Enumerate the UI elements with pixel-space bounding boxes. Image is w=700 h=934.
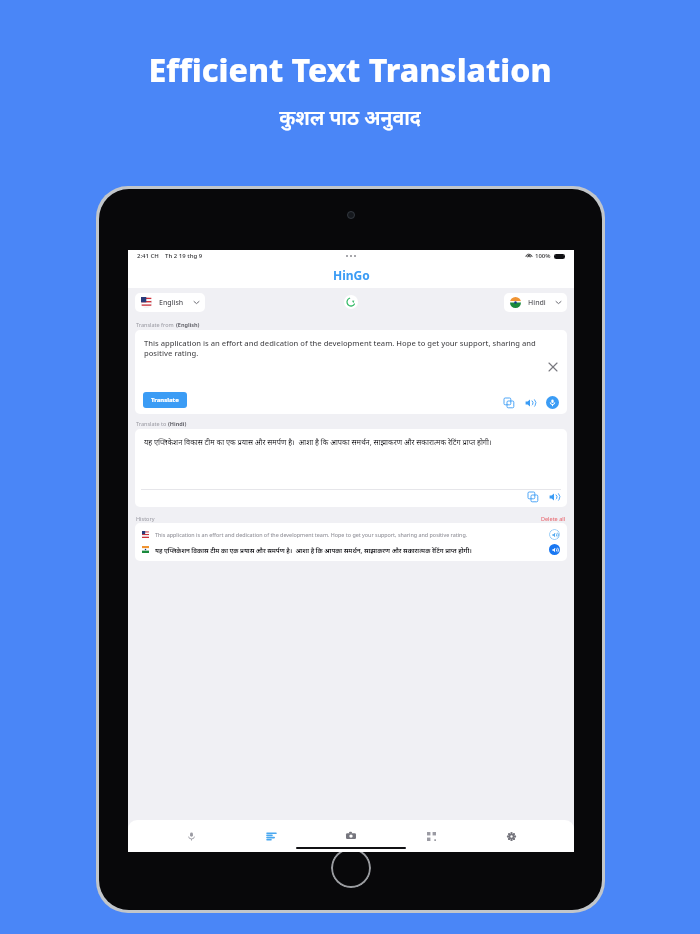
button[interactable]: Copy [528,492,538,502]
staticText: Efficient Text Translation [0,48,700,92]
button[interactable]: Translate [143,392,187,408]
staticText: 100% [535,252,551,260]
staticText: 2:41 CH [137,252,159,260]
button[interactable]: Speak [525,398,535,408]
staticText: English [159,298,184,308]
button[interactable]: Swap languages [344,295,358,309]
button[interactable]: Clear [548,362,558,372]
button[interactable]: Settings [494,827,528,845]
button[interactable]: English [135,293,205,312]
staticText: This application is an effort and dedica… [144,338,543,358]
staticText: (Hindi) [168,420,187,427]
button[interactable]: Hindi [504,293,567,312]
staticText: यह एप्लिकेशन विकास टीम का एक प्रयास और स… [155,546,545,554]
staticText: Hindi [528,298,546,308]
button[interactable]: Speak [552,532,558,538]
button[interactable]: This application is an effort and dedica… [135,527,567,542]
button[interactable]: Scan [414,827,448,845]
button[interactable]: Camera [334,827,368,845]
button[interactable]: Delete all [541,515,566,522]
button[interactable]: Copy [504,398,514,408]
staticText: कुशल पाठ अनुवाद [0,104,700,131]
staticText: यह एप्लिकेशन विकास टीम का एक प्रयास और स… [144,437,492,447]
staticText: Delete all [541,515,566,522]
button[interactable]: Voice input [546,396,559,409]
button[interactable]: Speak [552,547,558,553]
staticText: This application is an effort and dedica… [155,531,545,538]
button[interactable]: Text [254,827,288,845]
button[interactable]: Voice [174,827,208,845]
button[interactable]: यह एप्लिकेशन विकास टीम का एक प्रयास और स… [135,542,567,557]
button[interactable]: Home [331,848,371,888]
staticText: History [136,515,155,522]
staticText: Th 2 19 thg 9 [165,252,203,260]
staticText: Translate to [136,420,168,427]
staticText: Translate from [136,321,176,328]
staticText: Translate [151,396,179,404]
button[interactable]: Play Hindi [549,544,560,555]
button[interactable]: Speak [549,492,559,502]
staticText: HinGo [333,267,370,283]
button[interactable]: Play English [549,529,560,540]
staticText: (English) [176,321,200,328]
